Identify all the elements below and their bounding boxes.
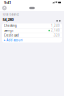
staticText: 9:41 bbox=[4, 0, 11, 5]
staticText: Credit card bbox=[4, 34, 19, 37]
button[interactable]: Search bbox=[56, 20, 58, 22]
staticText: Savings bbox=[4, 29, 13, 32]
staticText: Add account bbox=[6, 38, 23, 42]
staticText: $4,280 bbox=[2, 17, 13, 22]
staticText: -320 bbox=[53, 34, 60, 37]
staticText: 1,240 bbox=[51, 24, 60, 27]
button[interactable]: More bbox=[59, 20, 61, 22]
staticText: Total balance bbox=[2, 13, 19, 16]
button[interactable]: Profile bbox=[2, 5, 7, 11]
staticText: Checking bbox=[4, 24, 17, 27]
button[interactable]: Checking bbox=[2, 23, 62, 28]
button[interactable]: Savings bbox=[2, 28, 62, 33]
button[interactable]: Add account bbox=[2, 38, 62, 42]
button[interactable]: Credit card bbox=[2, 33, 62, 38]
staticText: 2,140 bbox=[51, 29, 60, 32]
